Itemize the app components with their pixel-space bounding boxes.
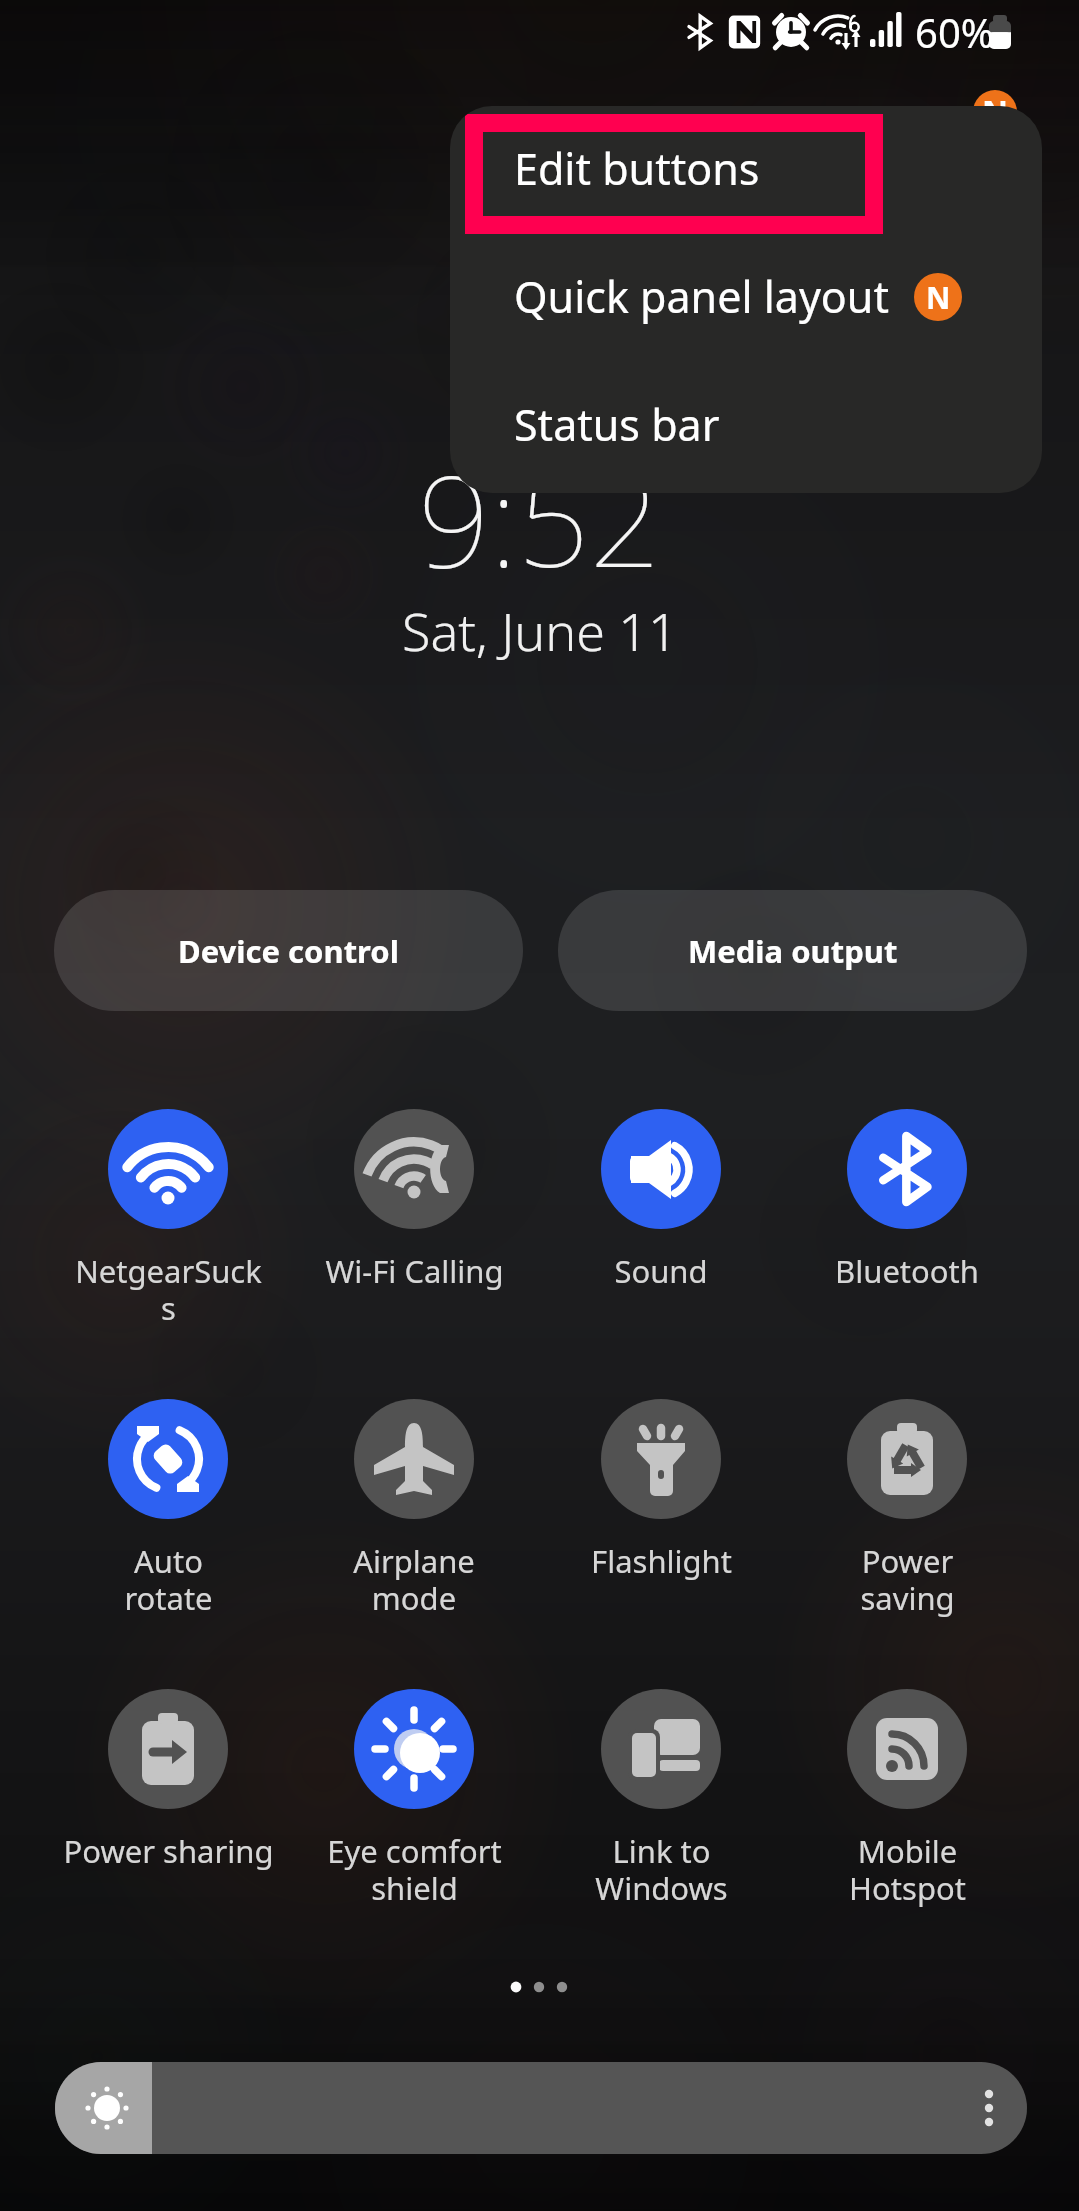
staticText: Status bar [514,395,720,454]
button[interactable]: Link to Windows [538,1689,784,1909]
staticText: Edit buttons [514,139,760,198]
staticText: Quick panel layout [514,267,889,326]
button[interactable]: Wi-Fi Calling [291,1109,537,1292]
staticText: Power saving [860,1540,955,1619]
button[interactable]: Edit buttons [450,106,1042,234]
button[interactable]: Mobile Hotspot [784,1689,1030,1909]
button[interactable]: Auto rotate [45,1399,291,1619]
staticText: Auto rotate [124,1540,213,1619]
button[interactable]: Eye comfort shield [291,1689,537,1909]
staticText: Media output [688,930,898,972]
button[interactable]: NetgearSuck s [45,1109,291,1329]
staticText: NetgearSuck s [75,1250,262,1329]
button[interactable]: Airplane mode [291,1399,537,1619]
button[interactable]: Quick panel layout [450,231,1042,362]
staticText: Airplane mode [353,1540,475,1619]
staticText: Device control [178,930,399,972]
staticText: N [982,90,1009,134]
staticText: Sound [614,1250,708,1292]
staticText: N [926,277,951,318]
button[interactable]: Brightness [55,2062,1027,2154]
staticText: Mobile Hotspot [849,1830,966,1909]
button[interactable]: Device control [54,890,523,1011]
button[interactable]: Sound [538,1109,784,1292]
button[interactable]: Power saving [784,1399,1030,1619]
button[interactable]: Media output [558,890,1027,1011]
staticText: Eye comfort shield [327,1830,502,1909]
button[interactable]: Flashlight [538,1399,784,1582]
staticText: Link to Windows [595,1830,728,1909]
staticText: Flashlight [591,1540,732,1582]
staticText: 60% [915,5,994,59]
staticText: Sat, June 11 [402,595,678,666]
staticText: Power sharing [63,1830,274,1872]
staticText: Wi-Fi Calling [325,1250,504,1292]
button[interactable]: Bluetooth [784,1109,1030,1292]
staticText: 9:52 [418,432,662,604]
button[interactable]: Power sharing [45,1689,291,1872]
button[interactable]: Status bar [450,359,1042,490]
staticText: Bluetooth [835,1250,979,1292]
